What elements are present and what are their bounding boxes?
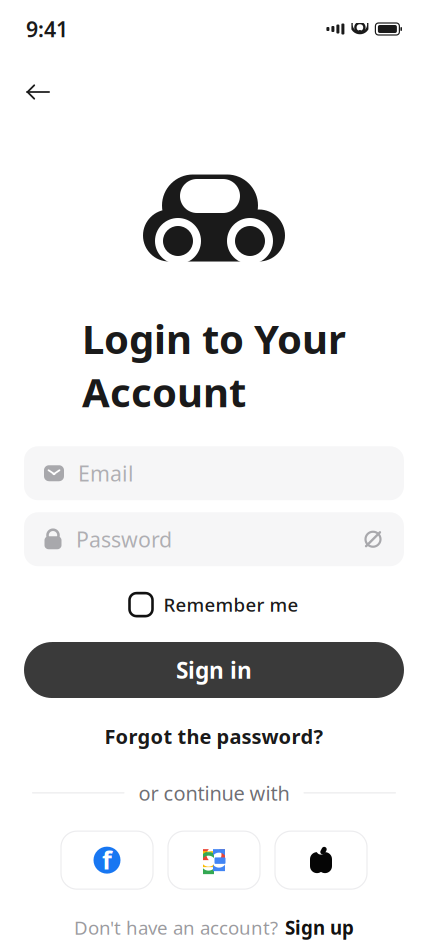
staticText: Sign in bbox=[176, 655, 252, 685]
staticText: Forgot the password? bbox=[104, 723, 323, 750]
staticText: Remember me bbox=[163, 592, 298, 617]
button[interactable]: Show password bbox=[356, 522, 390, 556]
staticText: Login to Your Account bbox=[82, 312, 346, 418]
button[interactable]: Sign up bbox=[285, 911, 354, 944]
button[interactable]: Continue with Apple bbox=[275, 831, 367, 889]
staticText: Email bbox=[78, 459, 134, 487]
button[interactable]: Sign in bbox=[24, 642, 404, 698]
button[interactable]: Back bbox=[16, 70, 60, 114]
staticText: f bbox=[102, 843, 112, 876]
button[interactable]: Remember me bbox=[123, 588, 304, 621]
staticText: Don't have an account? bbox=[74, 915, 278, 940]
staticText: 9:41 bbox=[26, 15, 68, 43]
staticText: or continue with bbox=[138, 780, 289, 806]
button[interactable]: Continue with Google bbox=[168, 831, 260, 889]
staticText: Sign up bbox=[285, 915, 354, 940]
button[interactable]: Continue with Facebook bbox=[61, 831, 153, 889]
button[interactable]: Forgot the password? bbox=[94, 717, 333, 756]
staticText: Password bbox=[76, 525, 172, 553]
